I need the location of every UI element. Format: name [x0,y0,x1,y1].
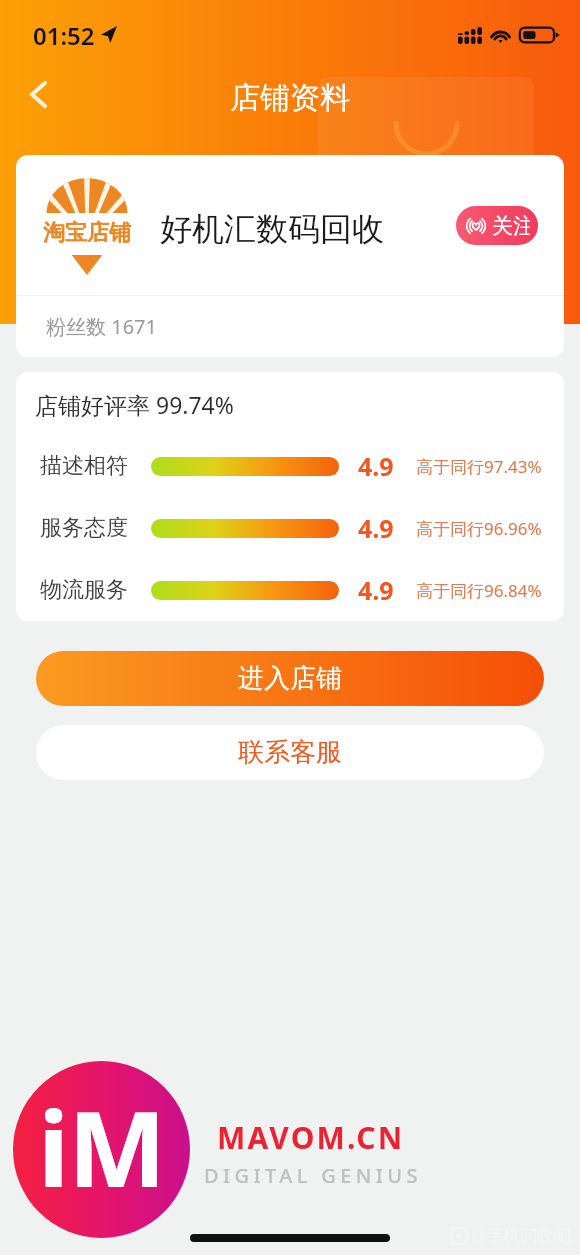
staticText: iM [38,1076,166,1218]
staticText: 粉丝数 1671 [46,313,157,340]
staticText: 01:52 [33,19,95,52]
staticText: 店铺好评率 99.74% [35,389,234,420]
staticText: 进入店铺 [238,662,342,695]
staticText: 4.9 [358,573,394,607]
staticText: DIGITAL GENIUS [204,1162,422,1189]
button[interactable]: 进入店铺 [36,651,544,706]
staticText: 高于同行96.84% [416,579,542,602]
staticText: 描述相符 [40,452,128,480]
staticText: 高于同行97.43% [416,455,542,478]
staticText: 4.9 [358,511,394,545]
staticText: 4.9 [358,449,394,483]
button[interactable]: 联系客服 [36,725,544,780]
staticText: MAVOM.CN [217,1117,405,1158]
staticText: 关注 [492,213,530,239]
staticText: 淘宝店铺 [42,219,132,247]
staticText: 服务态度 [40,514,128,542]
staticText: 物流服务 [40,576,128,604]
staticText: 好机汇数码回收 [160,209,384,249]
staticText: 店铺资料 [230,79,350,117]
button[interactable]: Back [10,66,66,122]
button[interactable]: 关注 [456,206,538,245]
staticText: 高于同行96.96% [416,517,542,540]
staticText: 联系客服 [238,736,342,769]
